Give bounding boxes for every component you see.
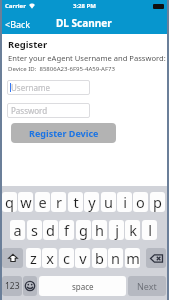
staticText: c [63, 248, 70, 268]
button[interactable]: q [2, 192, 17, 212]
button[interactable]: n [108, 248, 123, 268]
staticText: Register Device [29, 127, 99, 139]
button[interactable]: c [59, 248, 74, 268]
staticText: 123 [5, 280, 20, 292]
button[interactable]: Register Device [11, 123, 116, 143]
staticText: Username [11, 82, 50, 93]
staticText: Carrier [5, 2, 26, 10]
staticText: e [38, 192, 47, 212]
staticText: d [46, 220, 55, 240]
button[interactable]: Username [7, 80, 90, 95]
staticText: u [104, 192, 113, 212]
staticText: Device ID: 85806A23-6F95-4A59-AF73 [8, 65, 116, 73]
staticText: DL Scanner [56, 16, 112, 30]
button[interactable]: Emoji keyboard [23, 276, 37, 296]
button[interactable]: m [125, 248, 140, 268]
staticText: g [79, 220, 88, 240]
button[interactable]: t [68, 192, 83, 212]
button[interactable]: space [39, 276, 126, 296]
button[interactable]: i [117, 192, 132, 212]
button[interactable]: b [92, 248, 107, 268]
staticText: b [95, 248, 104, 268]
staticText: t [73, 192, 79, 212]
staticText: m [126, 248, 140, 268]
staticText: j [115, 220, 119, 240]
button[interactable]: j [109, 220, 124, 240]
staticText: s [31, 220, 38, 240]
button[interactable]: u [101, 192, 116, 212]
staticText: Register [8, 38, 48, 51]
button[interactable]: s [27, 220, 42, 240]
button[interactable]: r [51, 192, 66, 212]
staticText: o [136, 192, 145, 212]
staticText: z [30, 248, 37, 268]
button[interactable]: k [125, 220, 140, 240]
button[interactable]: w [18, 192, 33, 212]
button[interactable]: p [150, 192, 165, 212]
staticText: l [148, 220, 152, 240]
staticText: k [129, 220, 137, 240]
button[interactable]: <Back [5, 18, 31, 30]
staticText: p [153, 192, 162, 212]
button[interactable]: y [84, 192, 99, 212]
button[interactable]: d [43, 220, 58, 240]
button[interactable]: o [133, 192, 148, 212]
button[interactable]: z [26, 248, 41, 268]
staticText: x [46, 248, 54, 268]
staticText: y [88, 192, 96, 212]
staticText: q [5, 192, 14, 212]
button[interactable]: v [75, 248, 90, 268]
button[interactable]: h [92, 220, 107, 240]
staticText: n [111, 248, 120, 268]
staticText: Next [137, 280, 157, 292]
button[interactable]: Shift [2, 248, 23, 268]
staticText: Enter your eAgent Username and Password: [8, 53, 166, 63]
staticText: space [72, 281, 94, 292]
staticText: r [56, 192, 62, 212]
button[interactable]: Backspace [146, 248, 166, 268]
staticText: Password [11, 105, 48, 116]
staticText: a [13, 220, 22, 240]
button[interactable]: x [42, 248, 57, 268]
button[interactable]: a [10, 220, 25, 240]
button[interactable]: Password [7, 103, 90, 118]
staticText: i [123, 192, 127, 212]
staticText: v [79, 248, 87, 268]
staticText: 3:28 PM [73, 2, 96, 10]
button[interactable]: g [76, 220, 91, 240]
button[interactable]: l [142, 220, 157, 240]
staticText: h [95, 220, 104, 240]
staticText: <Back [5, 18, 31, 30]
button[interactable]: e [35, 192, 50, 212]
staticText: f [64, 220, 69, 240]
button[interactable]: Next [128, 276, 166, 296]
staticText: w [20, 192, 32, 212]
button[interactable]: f [59, 220, 74, 240]
button[interactable]: 123 [2, 276, 22, 296]
